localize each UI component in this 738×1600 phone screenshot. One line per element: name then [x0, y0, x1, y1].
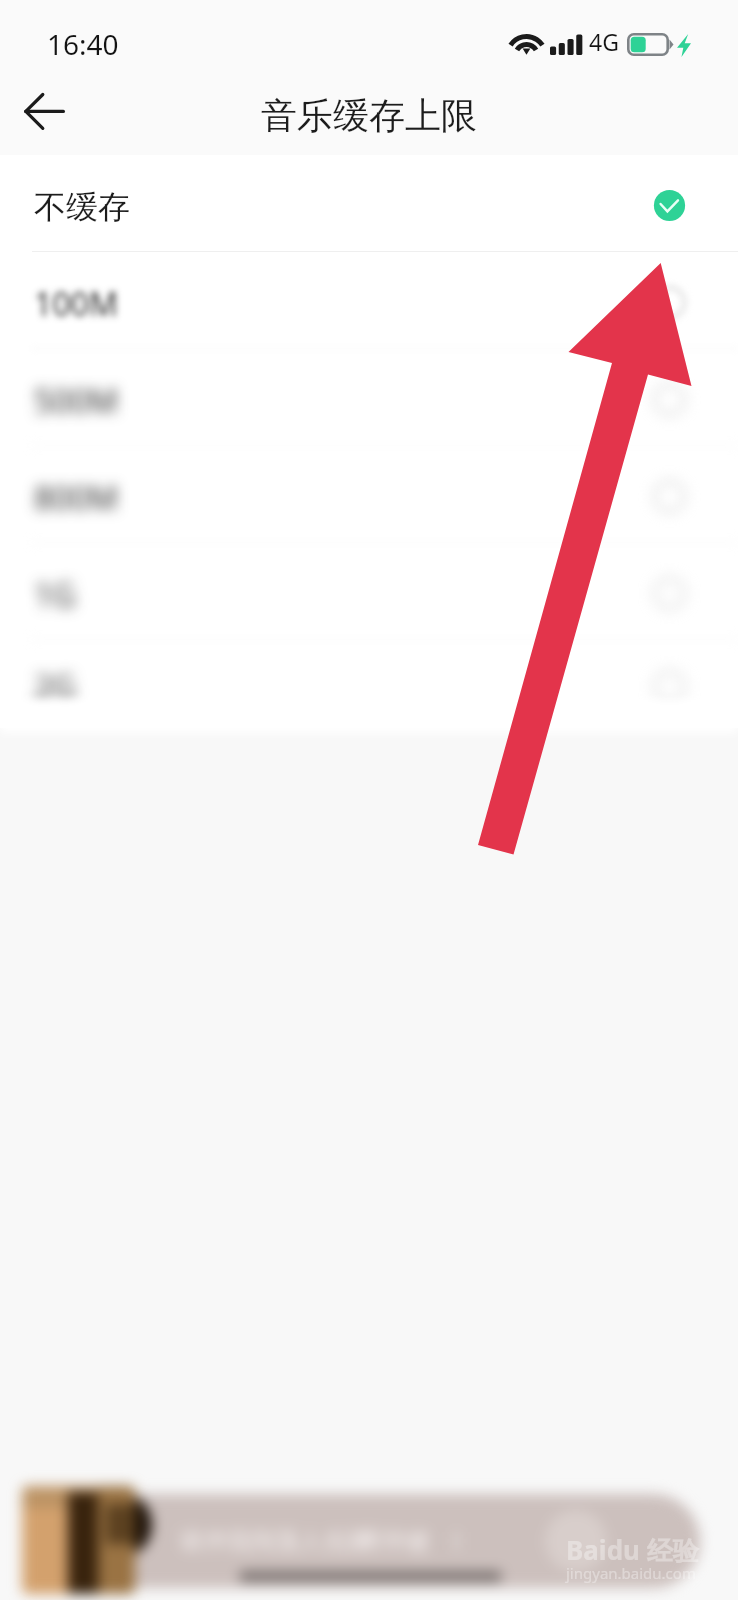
- staticText: 800M: [34, 476, 118, 520]
- staticText: 500M: [34, 379, 118, 423]
- staticText: 100M: [34, 282, 118, 326]
- button[interactable]: 不缓存: [0, 155, 738, 252]
- button[interactable]: 1G: [0, 543, 738, 640]
- button[interactable]: 500M: [0, 349, 738, 446]
- staticText: jingyan.baidu.com: [566, 1563, 696, 1583]
- staticText: 4G: [589, 26, 619, 57]
- button[interactable]: 100M: [0, 252, 738, 349]
- staticText: 2G: [34, 665, 76, 709]
- button[interactable]: 2G: [0, 640, 738, 728]
- staticText: 1G: [34, 573, 76, 617]
- staticText: 周华健: [358, 1526, 430, 1556]
- staticText: 不缓存: [34, 187, 130, 227]
- button[interactable]: 谁伴我闯荡人生路: [80, 1494, 700, 1588]
- staticText: 谁伴我闯荡人生路: [179, 1526, 371, 1556]
- staticText: 16:40: [47, 25, 119, 63]
- staticText: Baidu 经验: [566, 1532, 699, 1568]
- staticText: 音乐缓存上限: [261, 93, 477, 138]
- button[interactable]: Back: [10, 81, 80, 151]
- button[interactable]: 800M: [0, 446, 738, 543]
